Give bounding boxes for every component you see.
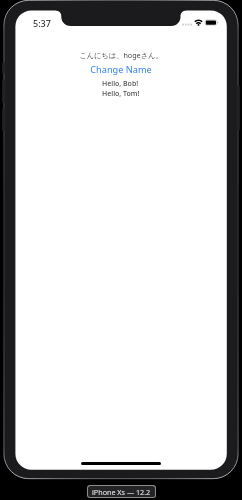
button[interactable]: iPhone Xs — 12.2	[88, 486, 155, 497]
staticText: 5:37	[33, 17, 51, 27]
staticText: Hello, Tom!	[102, 89, 140, 99]
button[interactable]: Change Name	[88, 63, 154, 76]
staticText: iPhone Xs — 12.2	[92, 487, 151, 497]
staticText: Change Name	[90, 63, 152, 76]
staticText: こんにちは、hogeさん。	[79, 50, 163, 60]
staticText: Hello, Bob!	[102, 79, 139, 89]
button[interactable]: Home	[73, 457, 169, 470]
